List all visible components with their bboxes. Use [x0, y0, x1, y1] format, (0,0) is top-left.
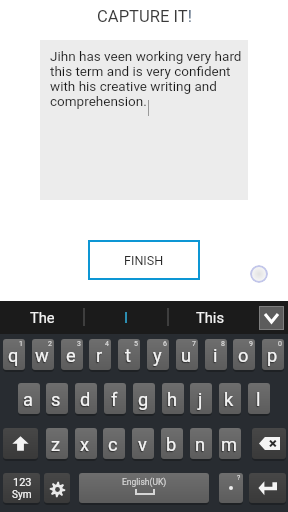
staticText: j — [198, 389, 203, 410]
button[interactable]: c — [103, 428, 125, 461]
button[interactable]: Settings — [44, 473, 70, 505]
staticText: s — [51, 389, 61, 410]
staticText: k — [224, 389, 234, 410]
staticText: 4 — [105, 340, 109, 348]
button[interactable]: Backspace — [252, 428, 286, 461]
button[interactable]: The — [0, 301, 84, 334]
button[interactable]: Symbols — [3, 473, 40, 505]
staticText: a — [23, 389, 33, 410]
staticText: y — [153, 345, 162, 366]
staticText: w — [35, 345, 49, 366]
button[interactable]: p — [262, 339, 284, 372]
staticText: CAPTURE IT! — [97, 7, 192, 26]
staticText: 2 — [48, 340, 52, 348]
button[interactable]: x — [75, 428, 97, 461]
staticText: p — [267, 345, 278, 366]
staticText: 3 — [77, 340, 81, 348]
button[interactable]: Period — [219, 473, 243, 505]
staticText: 6 — [163, 340, 167, 348]
button[interactable]: Space — [79, 473, 209, 505]
button[interactable]: Expand suggestions — [259, 306, 284, 330]
staticText: The — [30, 309, 55, 326]
staticText: t — [125, 345, 131, 366]
staticText: e — [66, 345, 76, 366]
button[interactable]: b — [161, 428, 183, 461]
button[interactable]: s — [46, 383, 68, 416]
staticText: Jihn has veen working very hard this ter… — [50, 48, 246, 109]
button[interactable]: n — [190, 428, 212, 461]
staticText: 7 — [192, 340, 196, 348]
button[interactable]: u — [176, 339, 198, 372]
button[interactable]: This — [168, 301, 252, 334]
button[interactable]: o — [233, 339, 255, 372]
button[interactable]: z — [46, 428, 68, 461]
button[interactable]: e — [61, 339, 83, 372]
button[interactable]: w — [32, 339, 54, 372]
staticText: d — [80, 389, 91, 410]
staticText: 1 — [19, 340, 23, 348]
button[interactable]: g — [133, 383, 155, 416]
staticText: ? — [237, 474, 241, 482]
button[interactable]: q — [3, 339, 25, 372]
staticText: 8 — [221, 340, 225, 348]
staticText: c — [108, 434, 118, 455]
staticText: FINISH — [124, 253, 164, 268]
staticText: f — [111, 389, 118, 410]
button[interactable]: j — [190, 383, 212, 416]
staticText: 123 — [13, 476, 32, 489]
button[interactable]: Enter — [249, 473, 286, 505]
staticText: n — [195, 434, 206, 455]
staticText: z — [51, 434, 61, 455]
button[interactable]: i — [205, 339, 227, 372]
button[interactable]: Shift — [3, 428, 38, 461]
staticText: b — [166, 434, 177, 455]
button[interactable]: f — [104, 383, 126, 416]
staticText: l — [256, 389, 261, 410]
staticText: r — [96, 345, 103, 366]
button[interactable]: l — [248, 383, 270, 416]
button[interactable]: y — [147, 339, 169, 372]
button[interactable]: k — [219, 383, 241, 416]
staticText: v — [138, 434, 147, 455]
staticText: x — [80, 434, 90, 455]
button[interactable]: a — [18, 383, 40, 416]
staticText: 9 — [249, 340, 253, 348]
button[interactable]: d — [75, 383, 97, 416]
staticText: English(UK) — [122, 477, 167, 487]
staticText: 0 — [278, 340, 282, 348]
staticText: h — [167, 389, 178, 410]
staticText: I — [124, 309, 128, 326]
staticText: o — [238, 345, 249, 366]
button[interactable]: t — [118, 339, 140, 372]
staticText: m — [221, 434, 237, 455]
button[interactable]: Jihn has veen working very hard this ter… — [40, 40, 248, 200]
button[interactable]: I — [84, 301, 168, 334]
button[interactable]: m — [219, 428, 241, 461]
button[interactable]: h — [162, 383, 184, 416]
button[interactable]: v — [132, 428, 154, 461]
staticText: q — [8, 345, 19, 366]
staticText: u — [181, 345, 192, 366]
staticText: i — [213, 345, 218, 366]
button[interactable]: FINISH — [88, 240, 200, 280]
staticText: 5 — [134, 340, 138, 348]
staticText: Sym — [12, 489, 32, 501]
button[interactable]: Record — [250, 265, 268, 283]
button[interactable]: r — [89, 339, 111, 372]
staticText: g — [138, 389, 149, 410]
staticText: This — [196, 309, 225, 326]
